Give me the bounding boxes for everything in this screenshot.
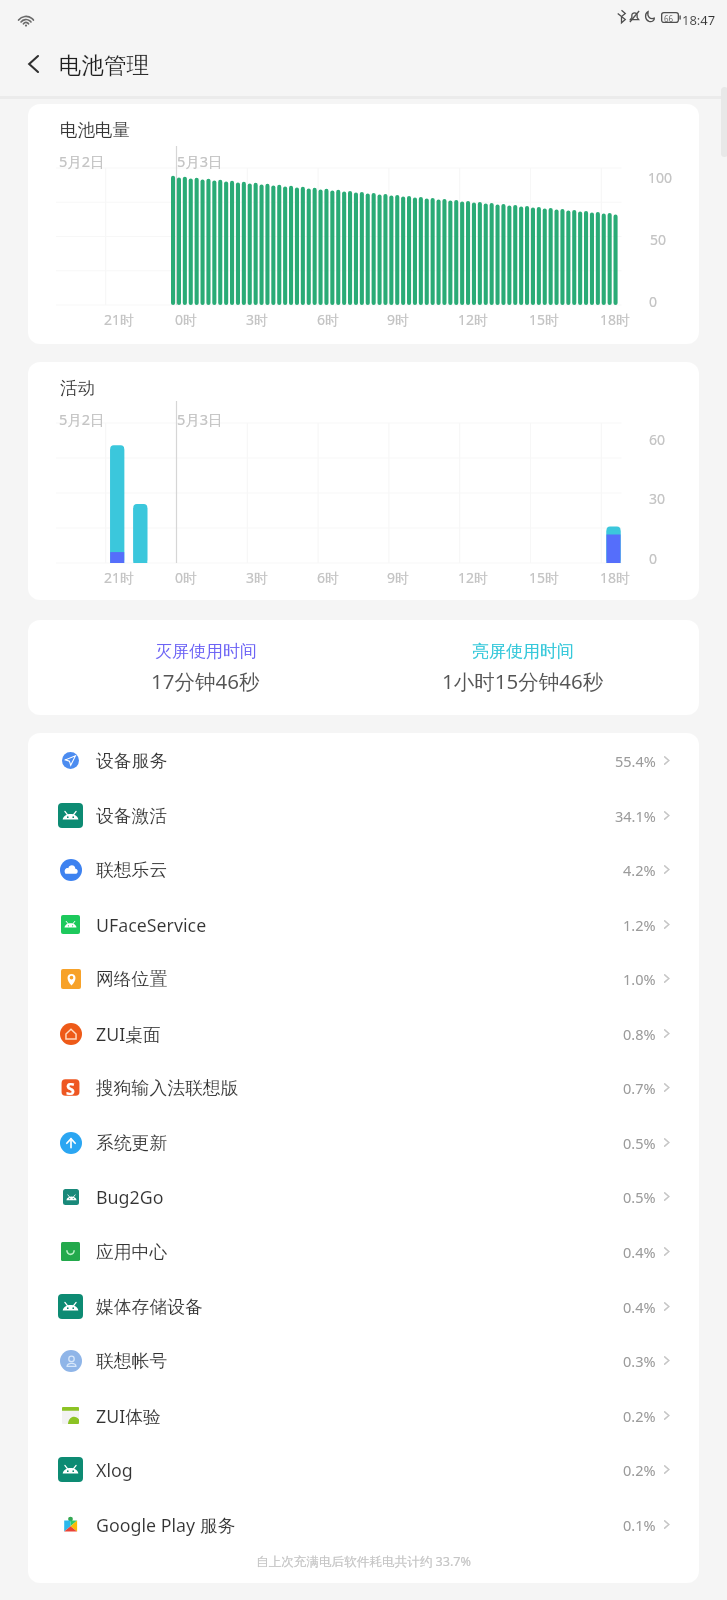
staticText: 18:47 xyxy=(682,11,716,29)
button[interactable]: 设备激活 xyxy=(28,788,699,843)
staticText: 媒体存储设备 xyxy=(96,1296,203,1318)
staticText: 30 xyxy=(649,489,666,508)
staticText: 6时 xyxy=(317,568,340,587)
staticText: 应用中心 xyxy=(96,1241,168,1263)
button[interactable]: Xlog xyxy=(28,1442,699,1497)
staticText: 60 xyxy=(649,430,666,449)
staticText: ZUI体验 xyxy=(96,1404,161,1428)
staticText: Google Play 服务 xyxy=(96,1513,236,1537)
staticText: 网络位置 xyxy=(96,968,168,990)
button[interactable]: Google Play 服务 xyxy=(28,1497,699,1552)
staticText: Xlog xyxy=(96,1458,133,1482)
staticText: 系统更新 xyxy=(96,1132,168,1154)
button[interactable]: Back xyxy=(5,36,61,92)
staticText: 1.0% xyxy=(623,969,656,989)
staticText: 自上次充满电后软件耗电共计约 33.7% xyxy=(256,1553,472,1570)
staticText: 5月2日 xyxy=(59,409,105,429)
staticText: 设备服务 xyxy=(96,750,168,772)
button[interactable]: 媒体存储设备 xyxy=(28,1279,699,1334)
staticText: 5月3日 xyxy=(177,409,223,429)
button[interactable]: ZUI桌面 xyxy=(28,1006,699,1061)
staticText: ZUI桌面 xyxy=(96,1022,161,1046)
staticText: 21时 xyxy=(104,568,135,587)
staticText: 0 xyxy=(649,292,658,311)
staticText: 联想帐号 xyxy=(96,1350,168,1372)
staticText: 0.2% xyxy=(623,1406,656,1426)
staticText: 15时 xyxy=(529,568,560,587)
staticText: 9时 xyxy=(387,310,410,329)
staticText: 活动 xyxy=(60,377,95,399)
staticText: 0.7% xyxy=(623,1078,656,1098)
button[interactable]: 联想乐云 xyxy=(28,842,699,897)
staticText: 电池管理 xyxy=(59,51,149,79)
staticText: 0.5% xyxy=(623,1187,656,1207)
staticText: 66 xyxy=(664,13,674,24)
staticText: 50 xyxy=(650,230,667,249)
staticText: 亮屏使用时间 xyxy=(472,641,574,662)
staticText: 1小时15分钟46秒 xyxy=(442,667,604,695)
staticText: 4.2% xyxy=(623,860,656,880)
staticText: S xyxy=(66,1078,75,1097)
button[interactable]: Bug2Go xyxy=(28,1169,699,1224)
staticText: 0时 xyxy=(175,568,198,587)
staticText: 搜狗输入法联想版 xyxy=(96,1077,239,1099)
button[interactable]: 网络位置 xyxy=(28,951,699,1006)
button[interactable]: 联想帐号 xyxy=(28,1333,699,1388)
staticText: 5月2日 xyxy=(59,151,105,171)
staticText: UFaceService xyxy=(96,913,207,937)
staticText: 18时 xyxy=(600,568,631,587)
staticText: 17分钟46秒 xyxy=(151,667,260,695)
staticText: 0.5% xyxy=(623,1133,656,1153)
staticText: 0.3% xyxy=(623,1351,656,1371)
button[interactable]: S xyxy=(28,1060,699,1115)
staticText: 0.2% xyxy=(623,1460,656,1480)
button[interactable]: ZUI体验 xyxy=(28,1388,699,1443)
staticText: 3时 xyxy=(246,568,269,587)
staticText: 0.8% xyxy=(623,1024,656,1044)
staticText: 0时 xyxy=(175,310,198,329)
staticText: 灭屏使用时间 xyxy=(155,641,257,662)
staticText: 0 xyxy=(649,549,658,568)
staticText: 设备激活 xyxy=(96,805,168,827)
staticText: 21时 xyxy=(104,310,135,329)
staticText: 12时 xyxy=(458,568,489,587)
button[interactable]: 设备服务 xyxy=(28,733,699,788)
button[interactable]: 灭屏使用时间 xyxy=(40,620,371,715)
staticText: 12时 xyxy=(458,310,489,329)
staticText: 6时 xyxy=(317,310,340,329)
button[interactable]: UFaceService xyxy=(28,897,699,952)
staticText: 15时 xyxy=(529,310,560,329)
button[interactable]: 亮屏使用时间 xyxy=(357,620,688,715)
staticText: 5月3日 xyxy=(177,151,223,171)
staticText: 0.4% xyxy=(623,1297,656,1317)
button[interactable]: 系统更新 xyxy=(28,1115,699,1170)
staticText: 34.1% xyxy=(615,806,656,826)
staticText: 1.2% xyxy=(623,915,656,935)
staticText: 55.4% xyxy=(615,751,656,771)
staticText: 电池电量 xyxy=(60,119,130,141)
staticText: 联想乐云 xyxy=(96,859,168,881)
staticText: 0.4% xyxy=(623,1242,656,1262)
button[interactable]: 应用中心 xyxy=(28,1224,699,1279)
staticText: Bug2Go xyxy=(96,1185,164,1209)
staticText: 18时 xyxy=(600,310,631,329)
staticText: 3时 xyxy=(246,310,269,329)
staticText: 100 xyxy=(648,168,673,187)
staticText: 0.1% xyxy=(623,1515,656,1535)
staticText: 9时 xyxy=(387,568,410,587)
